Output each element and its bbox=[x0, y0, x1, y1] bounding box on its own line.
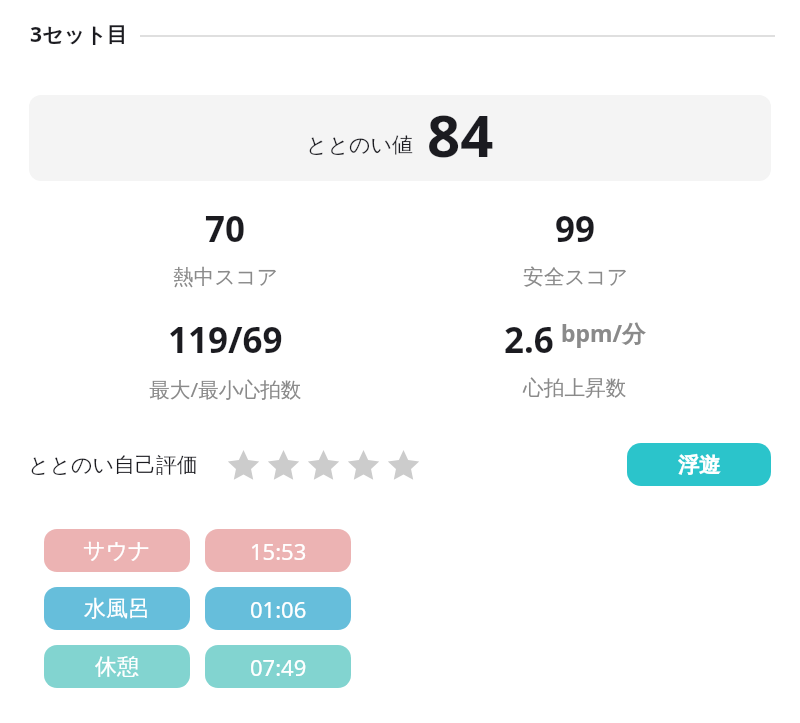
staticText: 最大/最小心拍数 bbox=[149, 375, 302, 403]
button[interactable]: 07:49 bbox=[205, 645, 351, 688]
button[interactable]: Rate 3 stars bbox=[303, 445, 343, 485]
staticText: 15:53 bbox=[250, 536, 307, 566]
staticText: ととのい自己評価 bbox=[28, 452, 198, 478]
button[interactable]: Rate 2 stars bbox=[263, 445, 303, 485]
button[interactable]: 01:06 bbox=[205, 587, 351, 630]
button[interactable]: Rate 4 stars bbox=[343, 445, 383, 485]
staticText: サウナ bbox=[83, 537, 151, 565]
button[interactable]: 休憩 bbox=[44, 645, 190, 688]
staticText: 119/69 bbox=[168, 316, 283, 364]
staticText: 水風呂 bbox=[84, 595, 150, 623]
staticText: 99 bbox=[555, 205, 596, 253]
staticText: 安全スコア bbox=[523, 264, 628, 290]
button[interactable]: 15:53 bbox=[205, 529, 351, 572]
button[interactable]: Rate 5 stars bbox=[383, 445, 423, 485]
button[interactable]: サウナ bbox=[44, 529, 190, 572]
staticText: 01:06 bbox=[250, 594, 307, 624]
button[interactable]: Rate 1 stars bbox=[223, 445, 263, 485]
staticText: 心拍上昇数 bbox=[523, 375, 627, 401]
staticText: 84 bbox=[427, 95, 494, 174]
staticText: ととのい値 bbox=[306, 132, 413, 158]
button[interactable]: 浮遊 bbox=[627, 443, 771, 486]
staticText: 浮遊 bbox=[678, 452, 720, 478]
staticText: 休憩 bbox=[95, 653, 139, 681]
staticText: 2.6 bbox=[504, 316, 554, 364]
staticText: 3セット目 bbox=[30, 20, 128, 49]
button[interactable]: 水風呂 bbox=[44, 587, 190, 630]
staticText: bpm/分 bbox=[561, 317, 646, 348]
staticText: 07:49 bbox=[250, 652, 307, 682]
staticText: 熱中スコア bbox=[173, 264, 278, 290]
staticText: 70 bbox=[205, 205, 246, 253]
